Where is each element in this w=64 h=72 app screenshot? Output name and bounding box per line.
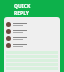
button[interactable] [4, 35, 60, 42]
staticText: QUICK [14, 3, 31, 10]
staticText: REPLY [14, 10, 29, 17]
button[interactable] [4, 21, 60, 28]
button[interactable] [4, 28, 60, 35]
button[interactable] [4, 42, 60, 49]
